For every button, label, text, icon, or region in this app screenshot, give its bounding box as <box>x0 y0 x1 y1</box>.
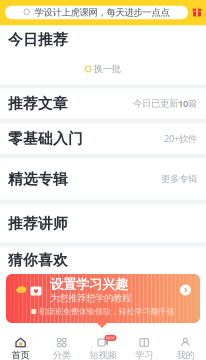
staticText: 零基础入门 <box>8 129 83 147</box>
staticText: 换一批 <box>94 63 121 75</box>
staticText: 今日推荐 <box>8 30 68 48</box>
staticText: 20+软件 <box>164 132 197 145</box>
staticText: 推荐讲师 <box>8 214 68 232</box>
staticText: 为您推荐想学的教程 <box>50 292 131 304</box>
button[interactable]: 推荐文章 <box>0 88 206 118</box>
staticText: 篇 <box>188 98 197 109</box>
staticText: 今日已更新 <box>133 98 178 109</box>
staticText: 短视频 <box>89 349 116 360</box>
button[interactable]: 学设计上虎课网，每天进步一点点 <box>5 6 188 19</box>
staticText: 精选专辑 <box>8 170 68 188</box>
button[interactable]: 分类 <box>41 328 82 360</box>
button[interactable]: 设置学习兴趣 <box>6 274 200 323</box>
button[interactable]: 我的 <box>165 328 206 360</box>
staticText: 首页 <box>12 349 30 360</box>
staticText: 猜你喜欢 <box>8 251 68 269</box>
staticText: NEW <box>106 335 115 341</box>
button[interactable]: 今日推荐 <box>0 25 206 53</box>
staticText: 推荐文章 <box>8 94 68 112</box>
staticText: 学习 <box>135 349 153 360</box>
staticText: 初级班免费体验领取，轻松学习翻千倍 <box>39 307 175 316</box>
button[interactable]: 零基础入门 <box>0 123 206 153</box>
button[interactable]: 猜你喜欢 <box>0 247 206 272</box>
staticText: 设置学习兴趣 <box>50 276 128 292</box>
button[interactable]: Gift <box>188 4 206 20</box>
button[interactable]: 首页 <box>0 328 41 360</box>
button[interactable]: 学习 <box>124 328 165 360</box>
staticText: 我的 <box>176 349 194 360</box>
staticText: 更多专辑 <box>161 173 197 185</box>
staticText: 分类 <box>53 349 71 360</box>
button[interactable]: NEW <box>82 328 124 360</box>
button[interactable]: 推荐讲师 <box>0 204 206 242</box>
staticText: 学设计上虎课网，每天进步一点点 <box>34 7 169 18</box>
button[interactable]: 精选专辑 <box>0 158 206 199</box>
staticText: 10 <box>178 97 188 110</box>
